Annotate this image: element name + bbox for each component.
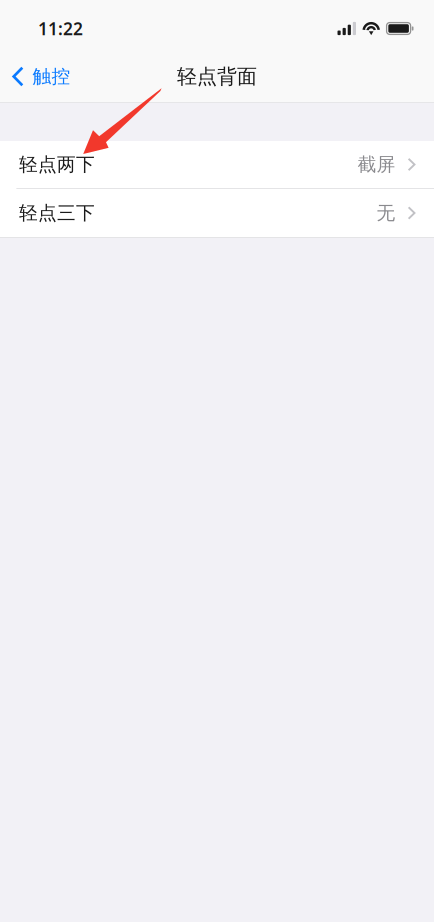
staticText: 轻点三下 [19,201,95,224]
staticText: 截屏 [358,153,396,176]
staticText: 无 [377,201,396,224]
button[interactable]: 轻点三下 [0,189,434,237]
staticText: 触控 [32,65,70,88]
button[interactable]: 触控 [0,54,82,98]
button[interactable]: 轻点两下 [0,141,434,188]
staticText: 轻点两下 [19,153,95,176]
staticText: 轻点背面 [177,64,257,89]
staticText: 11:22 [38,17,83,40]
